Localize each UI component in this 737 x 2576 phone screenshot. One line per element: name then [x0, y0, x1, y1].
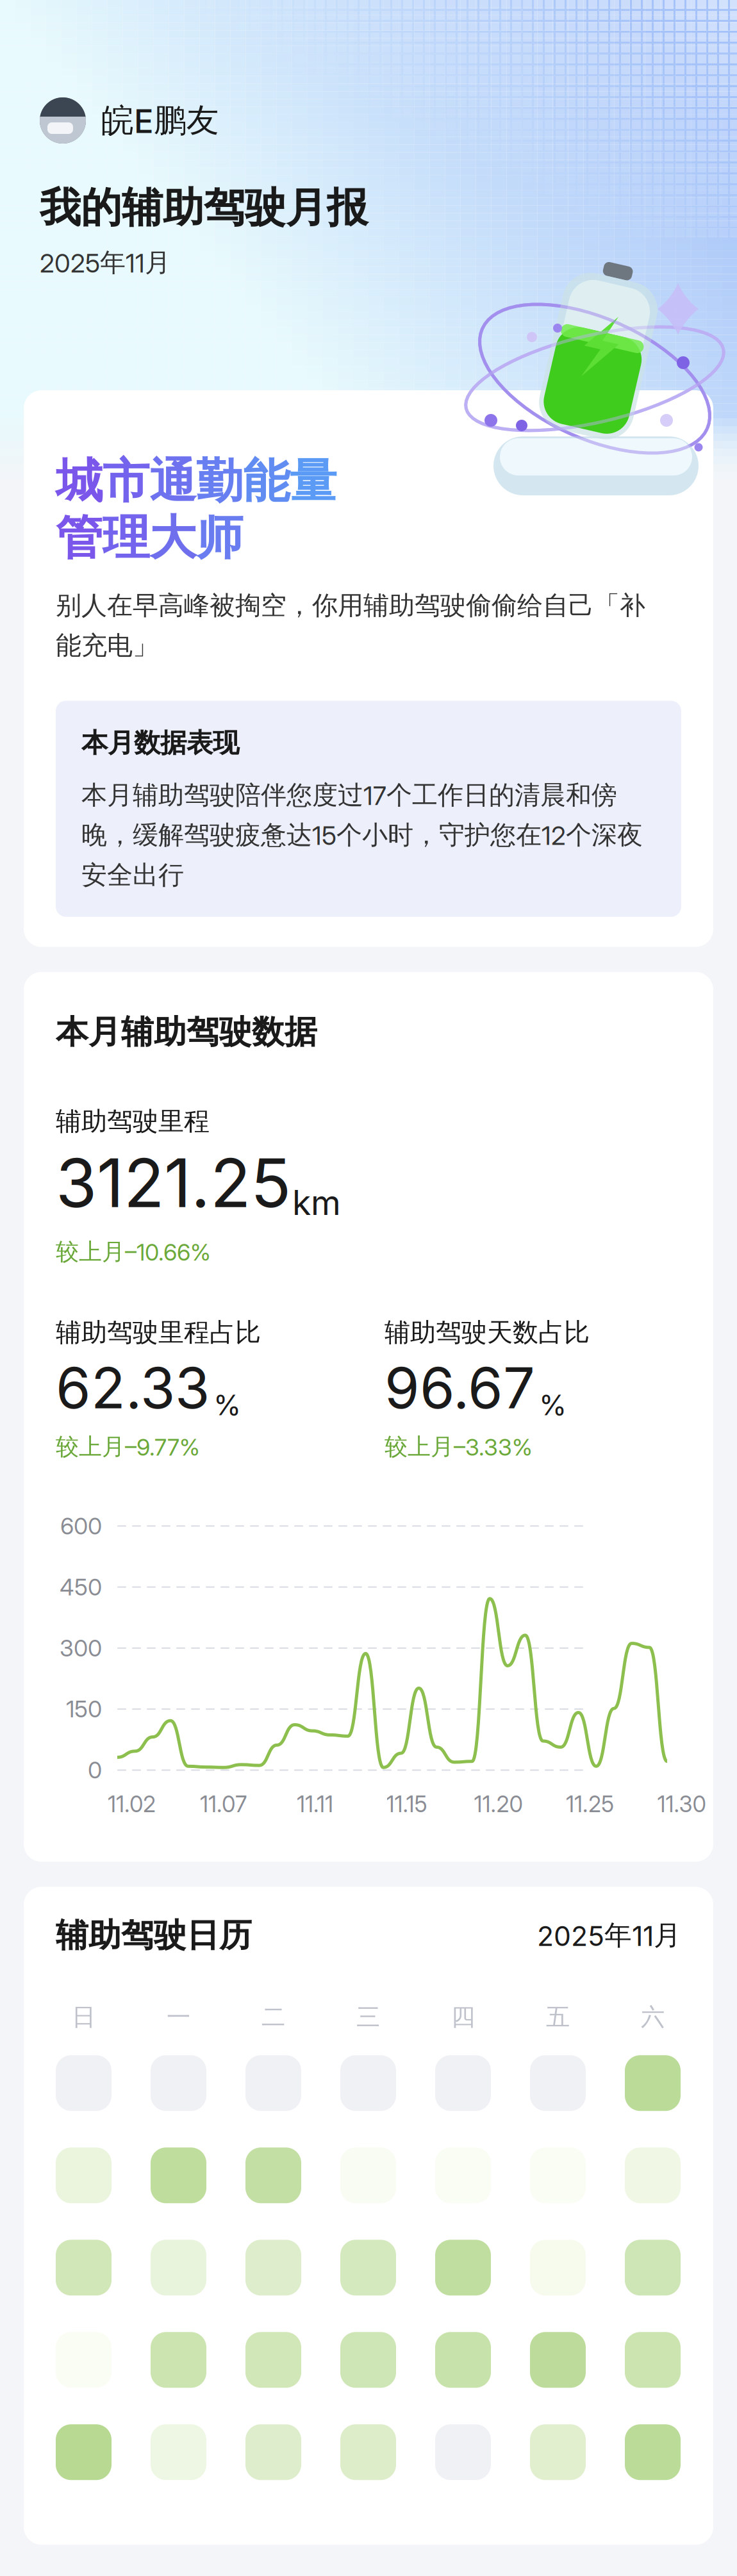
staticText: 2025年11月 — [537, 1918, 681, 1953]
staticText: 通 — [149, 452, 196, 511]
staticText: % — [539, 1388, 567, 1422]
staticText: 别人在早高峰被掏空，你用辅助驾驶偷偷给自己「补能充电」 — [56, 589, 645, 662]
button[interactable]: 皖E鹏友 — [0, 97, 219, 144]
staticText: 62.33 — [56, 1354, 210, 1422]
staticText: 本月辅助驾驶数据 — [56, 1012, 317, 1053]
staticText: 三 — [356, 2002, 380, 2032]
staticText: 市 — [103, 452, 149, 511]
staticText: 11.15 — [386, 1791, 427, 1817]
staticText: 一 — [167, 2002, 190, 2032]
staticText: 量 — [290, 452, 336, 511]
staticText: 管 — [56, 508, 103, 568]
staticText: 勤 — [196, 452, 243, 511]
staticText: % — [213, 1388, 241, 1422]
staticText: 城 — [56, 452, 103, 511]
staticText: 150 — [66, 1695, 102, 1723]
staticText: 96.67 — [385, 1354, 535, 1422]
staticText: km — [292, 1182, 341, 1223]
staticText: 理 — [103, 508, 149, 568]
staticText: 较上月–9.77% — [56, 1432, 200, 1461]
staticText: 能 — [243, 452, 290, 511]
staticText: 师 — [196, 508, 243, 568]
staticText: 本月数据表现 — [81, 726, 239, 760]
staticText: 11.25 — [566, 1791, 614, 1817]
staticText: 辅助驾驶日历 — [56, 1915, 252, 1956]
staticText: 四 — [451, 2002, 475, 2032]
staticText: 2025年11月 — [40, 246, 170, 279]
staticText: 我的辅助驾驶月报 — [40, 182, 368, 234]
staticText: 本月辅助驾驶陪伴您度过17个工作日的清晨和傍晚，缓解驾驶疲惫达15个小时，守护您… — [81, 779, 643, 891]
staticText: 日 — [72, 2002, 95, 2032]
staticText: 辅助驾驶里程占比 — [56, 1316, 261, 1349]
staticText: 300 — [60, 1634, 102, 1662]
staticText: 大 — [149, 508, 196, 568]
staticText: 辅助驾驶里程 — [56, 1105, 210, 1137]
staticText: 11.20 — [474, 1791, 523, 1817]
staticText: 五 — [546, 2002, 570, 2032]
staticText: 皖E鹏友 — [101, 100, 219, 141]
staticText: 11.07 — [200, 1791, 247, 1817]
staticText: 3121.25 — [56, 1143, 291, 1223]
staticText: 11.11 — [297, 1791, 333, 1817]
staticText: 较上月–10.66% — [56, 1237, 211, 1266]
staticText: 450 — [60, 1573, 102, 1601]
staticText: 较上月–3.33% — [385, 1432, 533, 1461]
staticText: 600 — [60, 1512, 102, 1540]
staticText: 辅助驾驶天数占比 — [385, 1316, 590, 1349]
staticText: 11.30 — [657, 1791, 706, 1817]
staticText: 六 — [641, 2002, 665, 2032]
staticText: 0 — [88, 1756, 102, 1784]
staticText: 11.02 — [108, 1791, 156, 1817]
staticText: 二 — [261, 2002, 285, 2032]
